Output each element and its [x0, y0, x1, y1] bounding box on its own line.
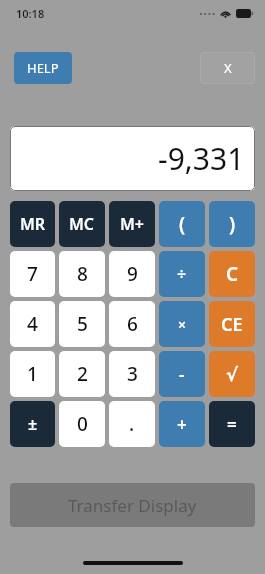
staticText: 4 [27, 311, 38, 337]
button[interactable]: + [159, 401, 205, 447]
button[interactable]: ± [10, 401, 55, 447]
staticText: MC [69, 213, 95, 235]
button[interactable]: √ [209, 351, 255, 397]
staticText: C [226, 261, 239, 287]
button[interactable]: -9,331 [10, 126, 255, 191]
staticText: ÷ [177, 263, 187, 285]
staticText: ± [28, 413, 38, 435]
staticText: . [129, 411, 135, 437]
staticText: Transfer Display [68, 494, 197, 517]
staticText: ( [179, 211, 186, 237]
staticText: 6 [127, 311, 138, 337]
staticText: CE [221, 312, 243, 337]
staticText: 2 [77, 361, 88, 387]
button[interactable]: ) [209, 201, 255, 247]
staticText: 10:18 [16, 6, 45, 21]
staticText: × [178, 315, 187, 334]
staticText: -9,331 [158, 138, 245, 179]
staticText: 3 [127, 361, 138, 387]
button[interactable]: C [209, 251, 255, 297]
button[interactable]: 0 [59, 401, 105, 447]
button[interactable]: × [159, 301, 205, 347]
staticText: M+ [120, 213, 145, 235]
button[interactable]: 9 [109, 251, 155, 297]
button[interactable]: ÷ [159, 251, 205, 297]
staticText: + [177, 413, 187, 436]
staticText: - [179, 363, 185, 386]
staticText: 9 [127, 261, 138, 287]
staticText: HELP [27, 59, 59, 77]
staticText: 0 [77, 411, 88, 437]
button[interactable]: Transfer Display [10, 483, 255, 527]
staticText: = [227, 413, 237, 436]
button[interactable]: 6 [109, 301, 155, 347]
staticText: 7 [27, 261, 38, 287]
button[interactable]: 4 [10, 301, 55, 347]
button[interactable]: 8 [59, 251, 105, 297]
staticText: MR [20, 213, 46, 235]
button[interactable]: 3 [109, 351, 155, 397]
staticText: 5 [77, 311, 88, 337]
button[interactable]: 1 [10, 351, 55, 397]
button[interactable]: 2 [59, 351, 105, 397]
button[interactable]: MC [59, 201, 105, 247]
button[interactable]: ( [159, 201, 205, 247]
button[interactable]: MR [10, 201, 55, 247]
button[interactable]: 5 [59, 301, 105, 347]
button[interactable]: 7 [10, 251, 55, 297]
staticText: 1 [27, 361, 38, 387]
button[interactable]: = [209, 401, 255, 447]
staticText: X [224, 59, 232, 77]
button[interactable]: - [159, 351, 205, 397]
button[interactable]: CE [209, 301, 255, 347]
staticText: √ [226, 364, 239, 385]
button[interactable]: Close [200, 52, 255, 84]
staticText: ) [229, 211, 236, 237]
button[interactable]: M+ [109, 201, 155, 247]
button[interactable]: HELP [14, 52, 72, 84]
button[interactable]: . [109, 401, 155, 447]
staticText: 8 [77, 261, 88, 287]
